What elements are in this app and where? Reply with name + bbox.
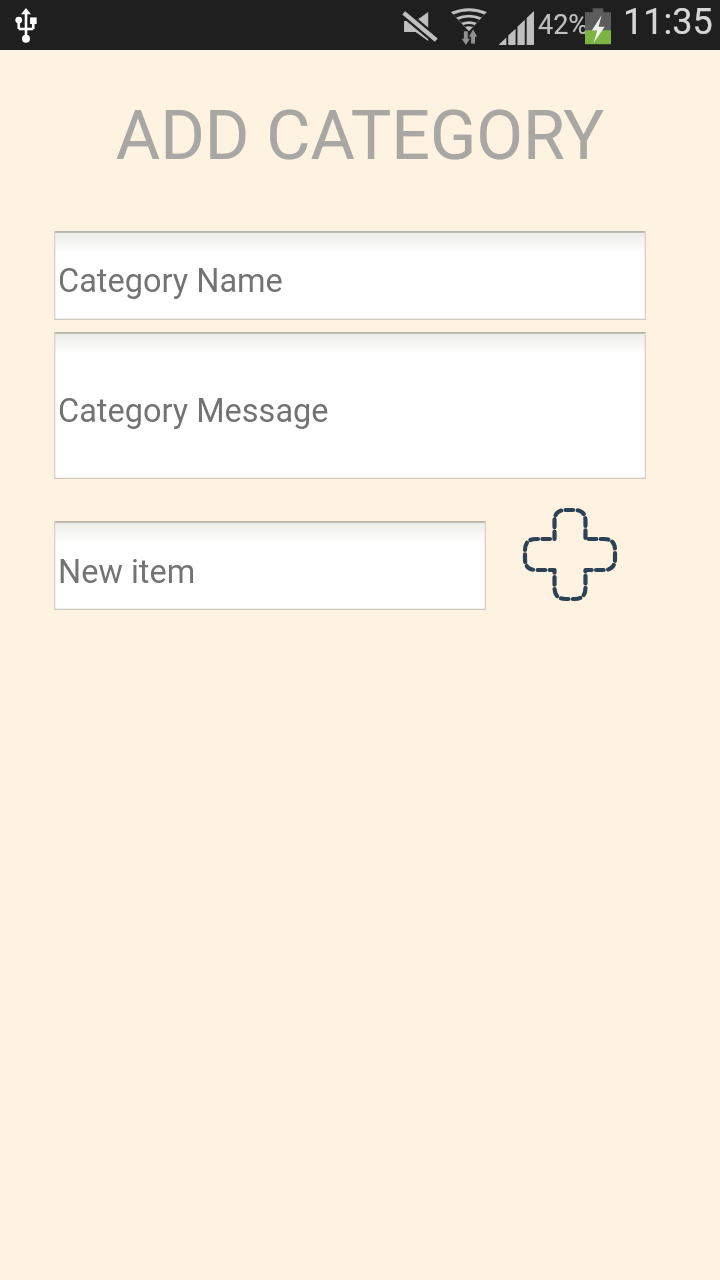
button[interactable]: Add item (508, 490, 632, 618)
staticText: 42% (538, 9, 589, 41)
staticText: Category Name (58, 262, 283, 300)
staticText: ADD CATEGORY (0, 96, 720, 176)
button[interactable]: Category Name (54, 231, 646, 320)
button[interactable]: Category Message (54, 332, 646, 479)
staticText: Category Message (58, 392, 329, 430)
staticText: 11:35 (623, 1, 713, 43)
button[interactable]: New item (54, 521, 486, 610)
staticText: New item (58, 553, 196, 591)
